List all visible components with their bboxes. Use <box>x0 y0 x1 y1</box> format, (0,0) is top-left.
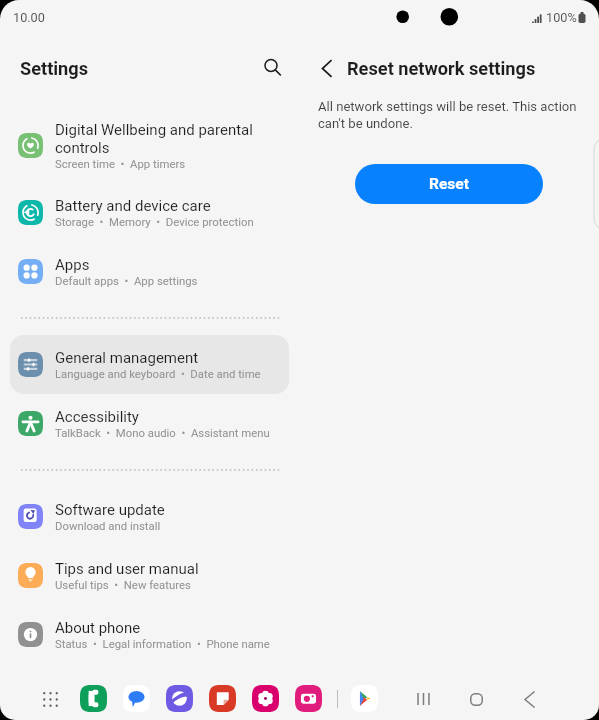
staticText: Useful tips • New features <box>55 578 191 591</box>
button[interactable]: Recents <box>405 681 441 717</box>
staticText: Tips and user manual <box>55 560 199 578</box>
staticText: Default apps • App settings <box>55 274 198 287</box>
staticText: Accessibility <box>55 408 139 426</box>
button[interactable]: Play Store <box>348 682 381 715</box>
staticText: Digital Wellbeing and parental controls <box>55 121 253 157</box>
staticText: Storage • Memory • Device protection <box>55 215 254 228</box>
staticText: Status • Legal information • Phone name <box>55 637 270 650</box>
staticText: 100% <box>546 10 577 25</box>
button[interactable]: Tips and user manual <box>10 546 289 605</box>
button[interactable]: Messages <box>120 682 153 715</box>
button[interactable]: Samsung Notes <box>206 682 239 715</box>
staticText: Apps <box>55 256 90 274</box>
staticText: Reset network settings <box>347 58 536 79</box>
staticText: TalkBack • Mono audio • Assistant menu <box>55 426 270 439</box>
staticText: Download and install <box>55 519 161 532</box>
staticText: General management <box>55 349 199 367</box>
button[interactable]: About phone <box>10 605 289 664</box>
staticText: Language and keyboard • Date and time <box>55 367 261 380</box>
button[interactable]: Reset <box>355 164 543 204</box>
staticText: 10.00 <box>13 10 45 25</box>
button[interactable]: All apps <box>36 685 64 713</box>
button[interactable]: Digital Wellbeing and parental controls <box>10 107 289 183</box>
staticText: Battery and device care <box>55 197 211 215</box>
button[interactable]: Apps <box>10 242 289 301</box>
button[interactable]: Accessibility <box>10 394 289 453</box>
button[interactable]: Search <box>256 51 290 85</box>
button[interactable]: Back <box>313 55 339 81</box>
button[interactable]: Phone <box>77 682 110 715</box>
staticText: Reset <box>429 175 469 193</box>
button[interactable]: General management <box>10 335 289 394</box>
staticText: Screen time • App timers <box>55 157 186 170</box>
button[interactable]: Battery and device care <box>10 183 289 242</box>
button[interactable]: Gallery <box>249 682 282 715</box>
button[interactable]: Software update <box>10 487 289 546</box>
staticText: About phone <box>55 619 141 637</box>
button[interactable]: Camera <box>292 682 325 715</box>
staticText: Software update <box>55 501 165 519</box>
staticText: Settings <box>20 58 89 79</box>
button[interactable]: Internet <box>163 682 196 715</box>
button[interactable]: Home <box>458 681 494 717</box>
button[interactable]: Back <box>511 681 547 717</box>
staticText: All network settings will be reset. This… <box>318 99 577 132</box>
